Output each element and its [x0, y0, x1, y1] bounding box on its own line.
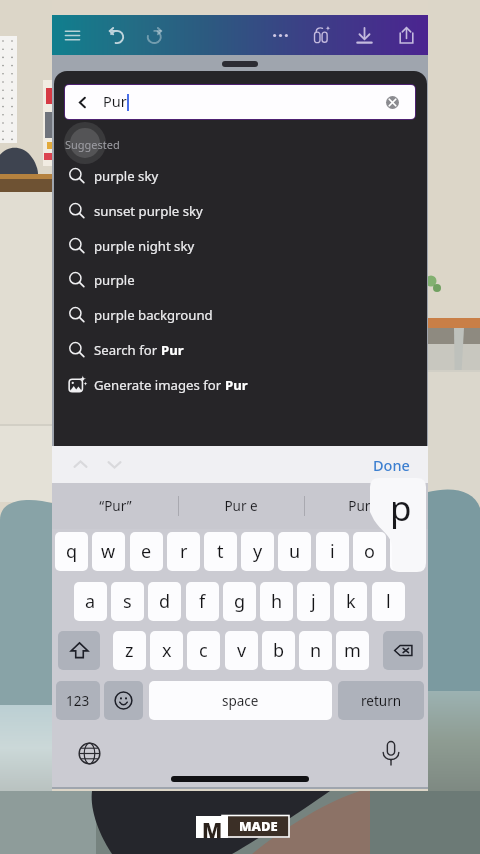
- button[interactable]: Duplicate page: [303, 15, 341, 55]
- staticText: o: [364, 539, 375, 564]
- button[interactable]: Back: [65, 85, 415, 119]
- button[interactable]: 123: [56, 681, 100, 720]
- button[interactable]: f: [186, 582, 219, 621]
- staticText: sunset purple sky: [94, 202, 203, 220]
- staticText: w: [101, 539, 116, 564]
- staticText: e: [141, 539, 152, 564]
- staticText: t: [217, 539, 224, 564]
- staticText: z: [125, 638, 134, 663]
- button[interactable]: q: [55, 532, 88, 571]
- staticText: a: [85, 589, 96, 614]
- staticText: d: [159, 589, 171, 614]
- button[interactable]: Search for: [52, 332, 428, 367]
- button[interactable]: j: [297, 582, 330, 621]
- staticText: purple background: [94, 306, 213, 324]
- staticText: M: [202, 816, 223, 838]
- button[interactable]: u: [278, 532, 311, 571]
- button[interactable]: Done: [363, 449, 420, 481]
- button[interactable]: z: [113, 631, 146, 670]
- button[interactable]: Clear search: [381, 91, 403, 113]
- staticText: Pur: [225, 376, 248, 394]
- button[interactable]: y: [241, 532, 274, 571]
- staticText: purple: [94, 271, 135, 289]
- button[interactable]: x: [150, 631, 183, 670]
- staticText: Generate images for: [94, 376, 225, 394]
- staticText: Suggested: [65, 137, 120, 152]
- button[interactable]: d: [148, 582, 181, 621]
- staticText: i: [330, 539, 335, 564]
- staticText: g: [234, 589, 246, 614]
- button[interactable]: Share: [387, 15, 425, 55]
- staticText: Pur: [161, 341, 184, 359]
- button[interactable]: Menu: [53, 15, 91, 55]
- staticText: c: [199, 638, 208, 663]
- button[interactable]: More options: [261, 15, 299, 55]
- button[interactable]: Dictation: [374, 736, 408, 770]
- button[interactable]: v: [225, 631, 258, 670]
- button[interactable]: t: [204, 532, 237, 571]
- button[interactable]: o: [353, 532, 386, 571]
- button[interactable]: n: [299, 631, 332, 670]
- button[interactable]: Switch keyboard: [72, 736, 106, 770]
- button[interactable]: Made with: [222, 816, 289, 838]
- staticText: space: [222, 692, 259, 710]
- button[interactable]: Next: [100, 450, 128, 478]
- staticText: q: [66, 539, 78, 564]
- staticText: Pur e: [224, 497, 258, 515]
- staticText: purple sky: [94, 167, 159, 185]
- staticText: x: [162, 638, 172, 663]
- button[interactable]: return: [338, 681, 424, 720]
- staticText: u: [289, 539, 301, 564]
- button[interactable]: Backspace: [383, 631, 423, 670]
- button[interactable]: b: [262, 631, 295, 670]
- button[interactable]: Download: [345, 15, 383, 55]
- button[interactable]: w: [92, 532, 125, 571]
- button[interactable]: k: [334, 582, 367, 621]
- button[interactable]: c: [187, 631, 220, 670]
- staticText: s: [123, 589, 132, 614]
- staticText: MADE: [239, 817, 278, 835]
- button[interactable]: e: [130, 532, 163, 571]
- staticText: Purtn: [348, 497, 384, 515]
- button[interactable]: Undo: [97, 15, 135, 55]
- staticText: purple night sky: [94, 237, 195, 255]
- staticText: r: [180, 539, 188, 564]
- staticText: m: [344, 638, 361, 663]
- button[interactable]: i: [316, 532, 349, 571]
- button[interactable]: space: [149, 681, 332, 720]
- button[interactable]: Pur e: [178, 483, 304, 529]
- button[interactable]: purple: [52, 262, 428, 297]
- staticText: 123: [66, 692, 90, 710]
- button[interactable]: sunset purple sky: [52, 193, 428, 228]
- button[interactable]: Emoji: [104, 681, 143, 720]
- button[interactable]: Back: [69, 89, 95, 115]
- button[interactable]: Purtn: [304, 483, 428, 529]
- button[interactable]: Shift: [58, 631, 100, 670]
- button[interactable]: r: [167, 532, 200, 571]
- staticText: l: [386, 589, 391, 614]
- button[interactable]: “Pur”: [52, 483, 178, 529]
- staticText: f: [199, 589, 206, 614]
- staticText: Pur: [103, 91, 127, 111]
- button[interactable]: purple night sky: [52, 228, 428, 263]
- button[interactable]: Generate images for: [52, 367, 428, 402]
- button[interactable]: s: [111, 582, 144, 621]
- button[interactable]: Drag handle: [222, 61, 258, 67]
- button[interactable]: a: [74, 582, 107, 621]
- button[interactable]: Redo: [135, 15, 173, 55]
- button[interactable]: Previous: [66, 450, 94, 478]
- staticText: return: [361, 692, 402, 710]
- staticText: b: [273, 638, 285, 663]
- staticText: n: [310, 638, 322, 663]
- staticText: p: [390, 484, 412, 532]
- staticText: Done: [373, 455, 410, 475]
- button[interactable]: purple background: [52, 297, 428, 332]
- button[interactable]: g: [223, 582, 256, 621]
- staticText: y: [253, 539, 263, 564]
- staticText: “Pur”: [99, 497, 132, 515]
- button[interactable]: m: [336, 631, 369, 670]
- button[interactable]: purple sky: [52, 158, 428, 193]
- button[interactable]: l: [372, 582, 405, 621]
- button[interactable]: h: [260, 582, 293, 621]
